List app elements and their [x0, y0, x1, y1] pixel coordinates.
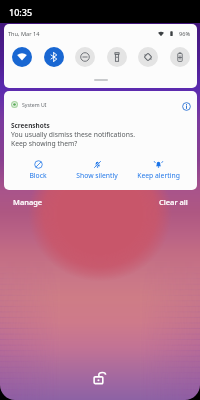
- staticText: Show silently: [76, 171, 118, 180]
- staticText: Screenshots: [11, 121, 50, 130]
- staticText: 96%: [179, 30, 191, 38]
- staticText: System UI: [22, 101, 47, 108]
- staticText: Manage: [13, 197, 43, 207]
- button[interactable]: Auto rotate: [138, 47, 158, 67]
- button[interactable]: Keep alerting: [130, 160, 186, 180]
- button[interactable]: Unlock: [92, 370, 108, 386]
- button[interactable]: Notification info: [179, 99, 193, 113]
- button[interactable]: Clear all: [155, 194, 192, 210]
- button[interactable]: Show silently: [69, 160, 125, 180]
- button[interactable]: Bluetooth: [44, 47, 64, 67]
- button[interactable]: Battery saver: [170, 47, 190, 67]
- button[interactable]: Wi-Fi: [12, 47, 32, 67]
- button[interactable]: Manage: [9, 194, 47, 210]
- button[interactable]: Do not disturb: [75, 47, 95, 67]
- button[interactable]: Block: [10, 160, 66, 180]
- button[interactable]: Flashlight: [107, 47, 127, 67]
- staticText: Clear all: [159, 197, 188, 207]
- staticText: Thu, Mar 14: [8, 30, 40, 38]
- staticText: 10:35: [9, 6, 33, 18]
- staticText: Keep alerting: [137, 171, 180, 180]
- staticText: You usually dismiss these notifications.…: [11, 130, 136, 148]
- staticText: Block: [29, 171, 47, 180]
